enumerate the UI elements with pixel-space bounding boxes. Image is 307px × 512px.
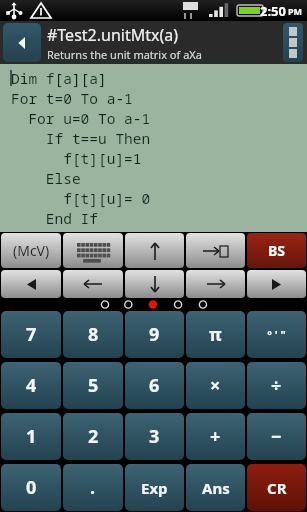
button[interactable]: ° ' ": [247, 311, 306, 358]
button[interactable]: .: [63, 464, 123, 511]
other: Up: [148, 242, 162, 260]
button[interactable]: 9: [125, 311, 184, 358]
staticText: 1: [26, 424, 37, 449]
button[interactable]: CR: [247, 464, 306, 511]
staticText: PM: [288, 5, 303, 17]
button[interactable]: 4: [1, 362, 61, 409]
staticText: For t=0 To a-1: [11, 88, 133, 108]
button[interactable]: 7: [1, 311, 61, 358]
staticText: 2:50: [260, 2, 286, 20]
button[interactable]: 2: [63, 413, 123, 460]
staticText: −: [271, 424, 282, 449]
staticText: +: [210, 424, 221, 449]
staticText: 7: [26, 322, 37, 347]
button[interactable]: (McV): [1, 233, 61, 268]
staticText: Ans: [202, 478, 230, 498]
staticText: 5: [88, 373, 99, 398]
other: Left: [84, 276, 102, 292]
other: Previous page: [27, 279, 36, 290]
staticText: #Test2.unitMtx(a): [47, 24, 179, 46]
staticText: ° ' ": [267, 327, 286, 342]
staticText: 8: [88, 322, 99, 347]
staticText: 3: [149, 424, 160, 449]
staticText: 0: [26, 475, 37, 500]
staticText: Exp: [141, 478, 168, 498]
other: Insert: [203, 244, 228, 258]
button[interactable]: 1: [1, 413, 61, 460]
staticText: If t==u Then: [11, 128, 151, 148]
staticText: f[t][u]=1: [11, 148, 142, 168]
other: Right: [207, 276, 225, 292]
button[interactable]: Exp: [125, 464, 184, 511]
staticText: f[t][u]= 0: [11, 188, 151, 208]
button[interactable]: Menu: [283, 23, 303, 62]
button[interactable]: +: [186, 413, 245, 460]
button[interactable]: BS: [247, 233, 306, 268]
staticText: ÷: [271, 373, 282, 398]
staticText: End If: [11, 208, 98, 228]
button[interactable]: π: [186, 311, 245, 358]
staticText: 9: [149, 322, 160, 347]
button[interactable]: ×: [186, 362, 245, 409]
button[interactable]: 6: [125, 362, 184, 409]
other: Keyboard: [76, 242, 110, 260]
button[interactable]: Ans: [186, 464, 245, 511]
button[interactable]: Back: [3, 23, 41, 62]
button[interactable]: 3: [125, 413, 184, 460]
staticText: π: [209, 323, 222, 346]
button[interactable]: 8: [63, 311, 123, 358]
other: Down: [146, 276, 164, 292]
button[interactable]: ÷: [247, 362, 306, 409]
staticText: Dim f[a][a]: [11, 68, 107, 88]
button[interactable]: Keyboard: [63, 233, 123, 268]
staticText: 4: [26, 373, 37, 398]
button[interactable]: Up: [125, 233, 184, 268]
button[interactable]: −: [247, 413, 306, 460]
button[interactable]: 5: [63, 362, 123, 409]
button[interactable]: Previous page: [1, 270, 61, 298]
staticText: For u=0 To a-1: [11, 108, 151, 128]
staticText: CR: [267, 478, 287, 498]
staticText: Returns the unit matrix of aXa: [47, 47, 202, 62]
button[interactable]: 0: [1, 464, 61, 511]
button[interactable]: Next page: [247, 270, 306, 298]
staticText: ×: [210, 373, 221, 398]
button[interactable]: Insert: [186, 233, 245, 268]
button[interactable]: Right: [186, 270, 245, 298]
staticText: 6: [149, 373, 160, 398]
staticText: Else: [11, 168, 81, 188]
button[interactable]: Left: [63, 270, 123, 298]
other: Next page: [272, 279, 281, 290]
staticText: 2: [88, 424, 99, 449]
button[interactable]: Down: [125, 270, 184, 298]
staticText: BS: [268, 241, 286, 260]
staticText: (McV): [13, 241, 50, 260]
staticText: .: [90, 475, 96, 500]
